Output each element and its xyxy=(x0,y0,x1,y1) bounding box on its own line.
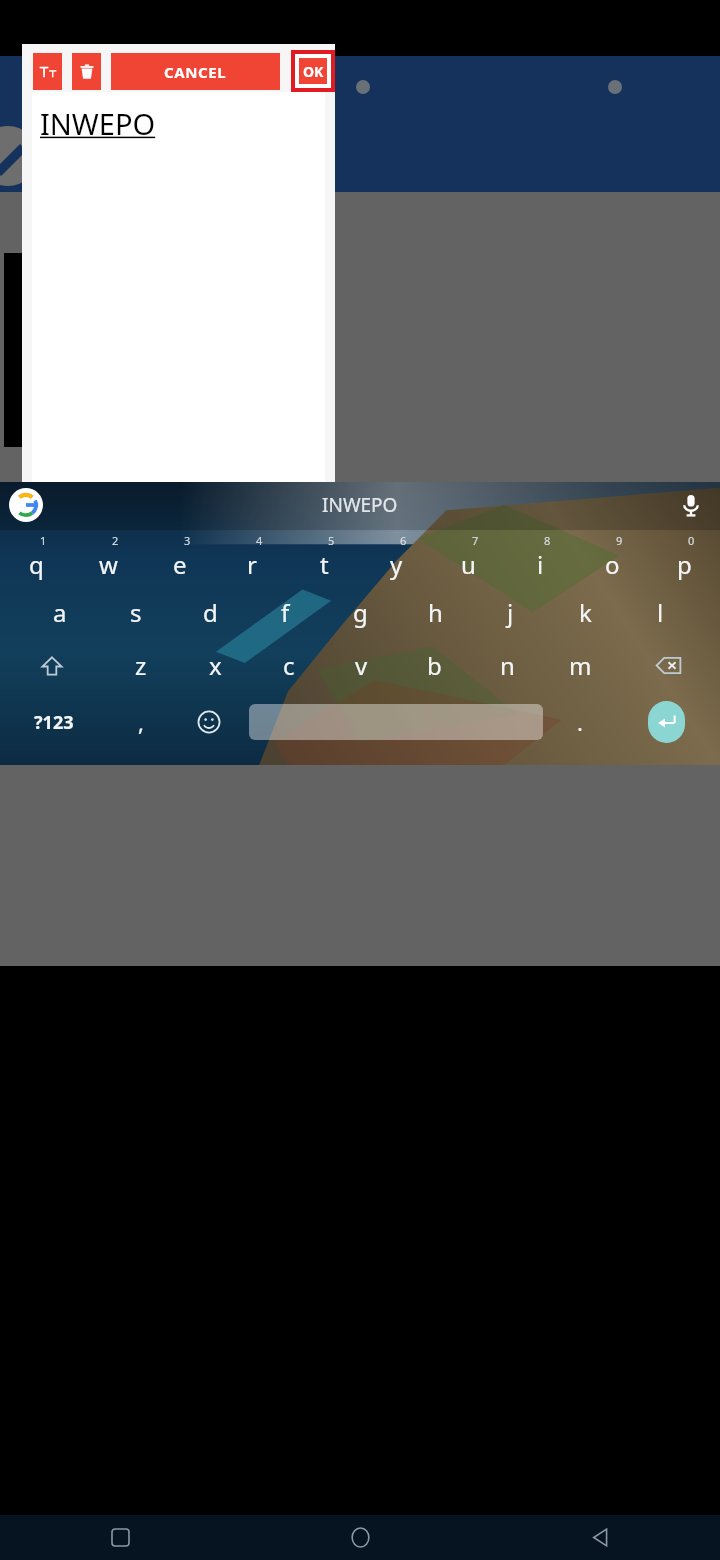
staticText: OK xyxy=(303,62,324,81)
button[interactable]: h xyxy=(398,586,473,639)
staticText: r xyxy=(247,548,257,581)
button[interactable]: l xyxy=(623,586,698,639)
staticText: , xyxy=(138,707,144,737)
staticText: a xyxy=(53,596,67,629)
staticText: v xyxy=(355,649,368,682)
button[interactable]: . xyxy=(547,692,612,752)
staticText: 6 xyxy=(400,533,407,548)
button[interactable]: 5 xyxy=(288,528,360,586)
staticText: l xyxy=(657,596,664,629)
staticText: q xyxy=(29,548,44,581)
button[interactable]: OK xyxy=(299,58,327,84)
staticText: INWEPO xyxy=(322,492,398,518)
button[interactable]: Recents xyxy=(0,1515,240,1560)
staticText: y xyxy=(390,548,403,581)
staticText: d xyxy=(203,596,218,629)
button[interactable]: Font size xyxy=(33,53,62,90)
staticText: 2 xyxy=(112,533,119,548)
staticText: c xyxy=(283,649,295,682)
button[interactable]: n xyxy=(471,639,544,692)
button[interactable]: Home xyxy=(240,1515,480,1560)
button[interactable]: 2 xyxy=(72,528,144,586)
button[interactable]: 0 xyxy=(648,528,720,586)
button[interactable]: Back xyxy=(480,1515,720,1560)
button[interactable]: Voice input xyxy=(676,490,706,520)
button[interactable]: Delete xyxy=(72,53,101,90)
button[interactable]: ?123 xyxy=(0,692,108,752)
staticText: e xyxy=(173,548,187,581)
button[interactable]: b xyxy=(398,639,471,692)
staticText: 1 xyxy=(40,533,47,548)
staticText: h xyxy=(428,596,443,629)
staticText: x xyxy=(209,649,222,682)
button[interactable]: Enter xyxy=(648,701,685,743)
staticText: b xyxy=(427,649,442,682)
button[interactable]: f xyxy=(248,586,323,639)
staticText: 7 xyxy=(472,533,479,548)
button[interactable]: a xyxy=(22,586,98,639)
staticText: 3 xyxy=(184,533,191,548)
staticText: p xyxy=(677,548,692,581)
button[interactable]: k xyxy=(548,586,623,639)
button[interactable]: j xyxy=(473,586,548,639)
button[interactable]: v xyxy=(325,639,398,692)
staticText: j xyxy=(507,596,514,629)
button[interactable]: 6 xyxy=(360,528,432,586)
button[interactable]: CANCEL xyxy=(111,53,280,90)
button[interactable]: 1 xyxy=(0,528,72,586)
staticText: . xyxy=(577,707,583,737)
button[interactable]: 7 xyxy=(432,528,504,586)
button[interactable]: Shift xyxy=(0,639,104,692)
staticText: f xyxy=(281,596,290,629)
button[interactable]: 3 xyxy=(144,528,216,586)
staticText: g xyxy=(353,596,368,629)
button[interactable]: , xyxy=(108,692,173,752)
button[interactable]: c xyxy=(252,639,325,692)
staticText: s xyxy=(130,596,142,629)
staticText: 8 xyxy=(544,533,551,548)
button[interactable]: 4 xyxy=(216,528,288,586)
staticText: ?123 xyxy=(34,710,74,735)
button[interactable]: Google xyxy=(9,488,43,522)
button[interactable]: z xyxy=(104,639,178,692)
staticText: CANCEL xyxy=(164,62,227,82)
button[interactable]: Space xyxy=(249,704,543,740)
staticText: w xyxy=(99,548,118,581)
staticText: 5 xyxy=(328,533,335,548)
button[interactable]: d xyxy=(173,586,248,639)
staticText: i xyxy=(537,548,544,581)
button[interactable]: INWEPO xyxy=(322,492,398,518)
staticText: m xyxy=(569,649,592,682)
button[interactable]: s xyxy=(98,586,173,639)
staticText: u xyxy=(461,548,476,581)
staticText: t xyxy=(320,548,329,581)
button[interactable]: x xyxy=(178,639,252,692)
button[interactable]: Emoji xyxy=(173,692,245,752)
staticText: 4 xyxy=(256,533,263,548)
button[interactable]: m xyxy=(544,639,617,692)
staticText: INWEPO xyxy=(40,104,156,143)
staticText: 0 xyxy=(688,533,695,548)
button[interactable]: g xyxy=(323,586,398,639)
button[interactable]: Backspace xyxy=(617,639,720,692)
button[interactable]: 8 xyxy=(504,528,576,586)
button[interactable]: 9 xyxy=(576,528,648,586)
staticText: o xyxy=(605,548,620,581)
staticText: 9 xyxy=(616,533,623,548)
staticText: z xyxy=(135,649,147,682)
staticText: n xyxy=(500,649,515,682)
staticText: k xyxy=(579,596,592,629)
